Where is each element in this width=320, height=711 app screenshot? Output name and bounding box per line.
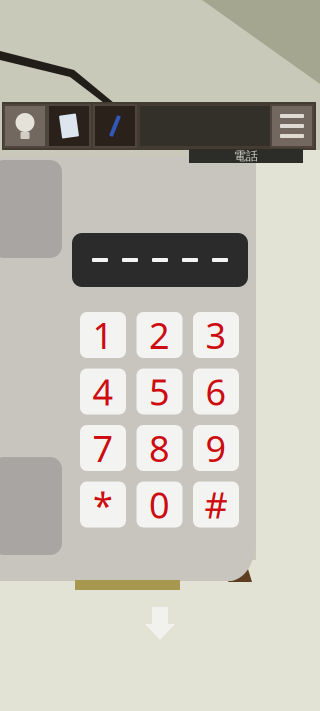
button[interactable]: 2 <box>136 312 182 358</box>
staticText: 5 <box>149 368 170 415</box>
button[interactable]: 4 <box>80 368 126 414</box>
staticText: 2 <box>149 311 170 359</box>
staticText: 4 <box>92 368 113 415</box>
button[interactable]: * <box>80 481 126 527</box>
staticText: * <box>93 481 113 528</box>
button[interactable]: 6 <box>193 368 239 414</box>
staticText: 電話 <box>234 149 258 163</box>
button[interactable]: Go back <box>145 607 175 640</box>
staticText: 6 <box>205 368 226 415</box>
button[interactable] <box>271 105 313 147</box>
button[interactable]: 9 <box>193 425 239 471</box>
staticText: 0 <box>149 481 170 528</box>
staticText: 1 <box>92 311 113 359</box>
button[interactable] <box>4 105 46 147</box>
button[interactable]: 0 <box>136 481 182 527</box>
button[interactable]: 5 <box>136 368 182 414</box>
button[interactable]: 1 <box>80 312 126 358</box>
staticText: 7 <box>92 424 113 472</box>
button[interactable]: 7 <box>80 425 126 471</box>
staticText: 9 <box>205 424 226 472</box>
staticText: # <box>204 481 227 528</box>
button[interactable]: # <box>193 481 239 527</box>
button[interactable] <box>48 105 90 147</box>
button[interactable]: 8 <box>136 425 182 471</box>
button[interactable]: 3 <box>193 312 239 358</box>
staticText: 3 <box>205 311 226 359</box>
button[interactable] <box>94 105 136 147</box>
staticText: 8 <box>149 424 170 472</box>
